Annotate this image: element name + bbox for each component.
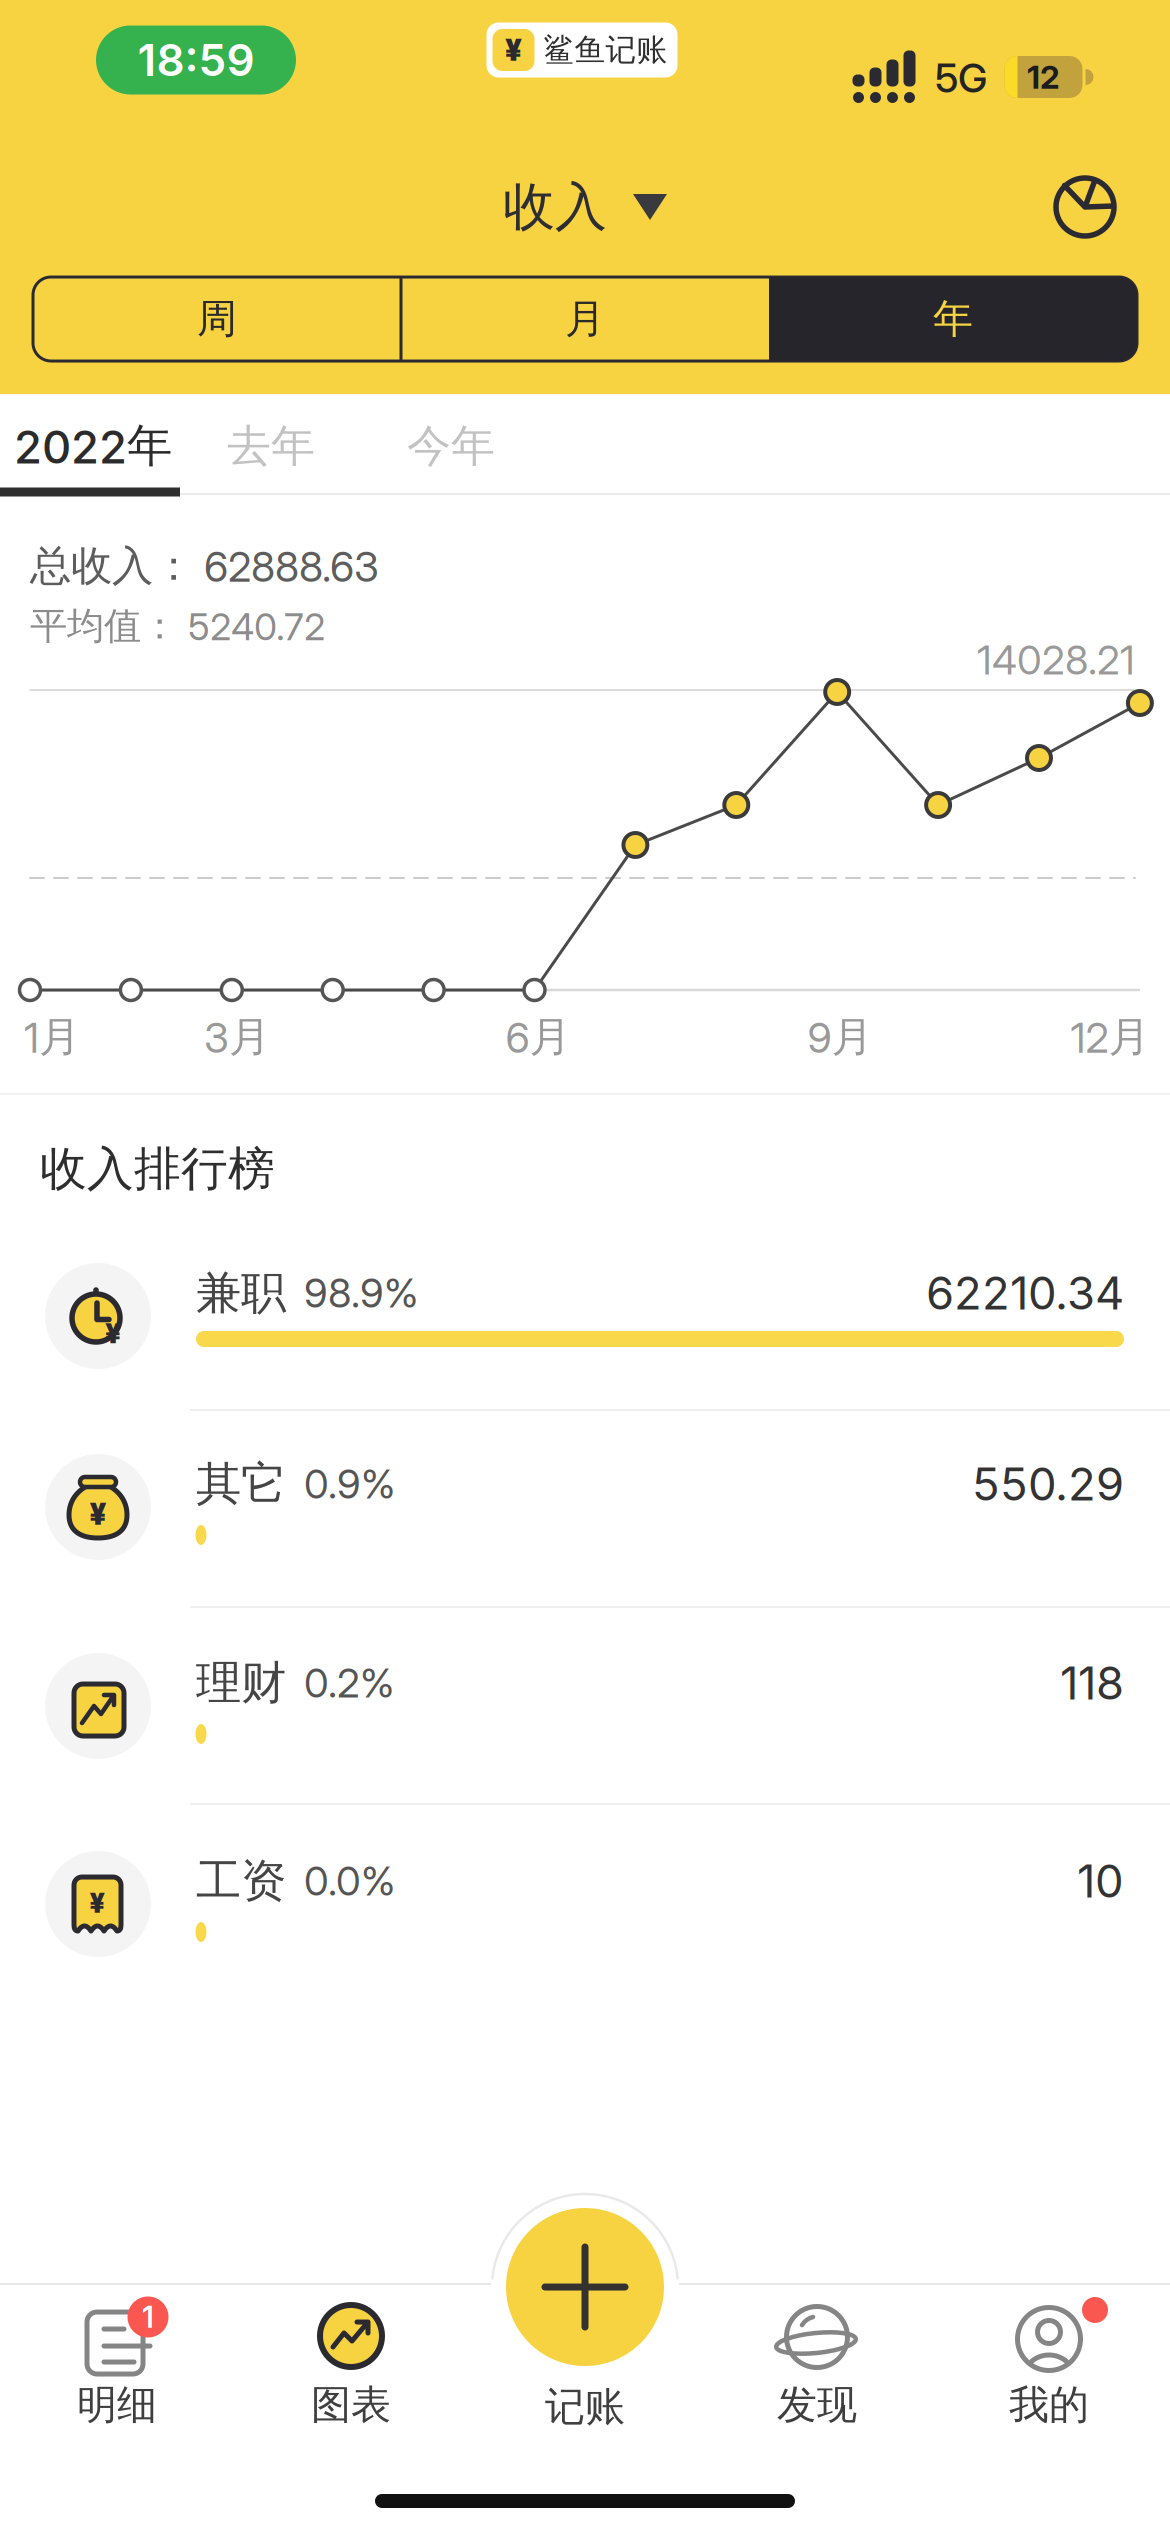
staticText: 今年 [407,419,495,473]
button[interactable]: 今年 [381,397,521,495]
staticText: 明细 [77,2380,157,2429]
staticText: 0.2% [304,1659,394,1707]
staticText: 去年 [227,419,315,473]
staticText: 14028.21 [977,636,1135,684]
button[interactable]: 图表 [251,2275,451,2455]
staticText: ¥ [505,33,522,67]
staticText: 12 [1027,58,1060,96]
button[interactable]: 我的 [949,2275,1149,2455]
staticText: 98.9% [304,1269,418,1317]
staticText: 总收入： 62888.63 [30,541,379,591]
staticText: 62210.34 [926,1266,1124,1320]
staticText: 2022年 [14,418,172,474]
staticText: 1 [142,2300,154,2334]
staticText: ¥ [89,1497,106,1531]
staticText: 收入排行榜 [40,1140,275,1198]
button[interactable]: 去年 [201,397,341,495]
staticText: 0.9% [304,1460,395,1508]
staticText: 3月 [204,1012,270,1062]
staticText: 9月 [807,1012,872,1062]
button[interactable]: 月 [401,277,769,361]
button[interactable]: ¥ [32,1412,1138,1602]
staticText: 理财 [196,1655,286,1711]
staticText: 18:59 [137,34,254,86]
staticText: ¥ [89,1887,105,1919]
staticText: 年 [933,294,973,343]
staticText: 其它 [196,1456,286,1512]
staticText: 0.0% [304,1857,395,1905]
button[interactable]: 收入 [503,172,667,242]
staticText: 周 [197,294,237,343]
staticText: 发现 [777,2380,857,2429]
staticText: 工资 [196,1853,286,1909]
staticText: 图表 [311,2380,391,2429]
button[interactable]: 1 [17,2275,217,2455]
button[interactable]: 2022年 [0,397,218,495]
staticText: 月 [565,294,605,343]
staticText: 550.29 [972,1457,1124,1511]
staticText: 兼职 [196,1265,286,1321]
staticText: 5G [935,54,987,102]
staticText: 6月 [505,1012,570,1062]
button[interactable]: 周 [33,277,401,361]
staticText: 12月 [1070,1012,1149,1062]
button[interactable]: 记账 [475,2190,695,2490]
button[interactable]: ¥ [32,1221,1138,1411]
staticText: 平均值： 5240.72 [30,603,325,649]
staticText: ¥ [105,1316,121,1349]
button[interactable]: 理财 [32,1611,1138,1801]
button[interactable]: ¥ [32,1809,1138,1999]
button[interactable]: 切换图表 [1051,173,1119,241]
staticText: 鲨鱼记账 [543,31,667,69]
staticText: 我的 [1009,2380,1089,2429]
button[interactable]: 发现 [717,2275,917,2455]
staticText: 1月 [24,1012,80,1062]
staticText: 记账 [545,2382,625,2431]
button[interactable]: 年 [769,277,1137,361]
staticText: 收入 [503,175,607,239]
staticText: 118 [1060,1656,1124,1710]
staticText: 10 [1077,1854,1124,1908]
